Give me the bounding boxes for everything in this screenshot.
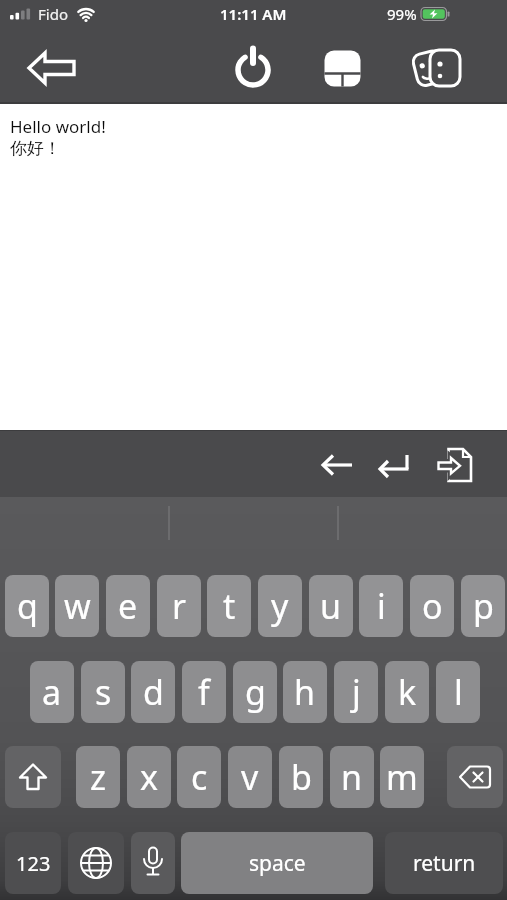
staticText: r: [172, 583, 187, 629]
button[interactable]: s: [81, 661, 125, 723]
staticText: k: [398, 669, 417, 715]
button[interactable]: u: [309, 575, 353, 637]
staticText: j: [352, 669, 361, 715]
staticText: 99%: [387, 4, 417, 24]
button[interactable]: l: [436, 661, 480, 723]
button[interactable]: [408, 42, 466, 94]
staticText: return: [413, 849, 476, 878]
button[interactable]: h: [283, 661, 327, 723]
button[interactable]: n: [330, 746, 374, 808]
staticText: d: [143, 669, 164, 715]
button[interactable]: [430, 442, 482, 488]
staticText: 11:11 AM: [220, 4, 287, 24]
button[interactable]: y: [258, 575, 302, 637]
button[interactable]: q: [5, 575, 49, 637]
staticText: m: [386, 754, 418, 800]
staticText: o: [422, 583, 443, 629]
button[interactable]: p: [461, 575, 505, 637]
staticText: q: [17, 583, 38, 629]
staticText: 123: [16, 850, 51, 877]
button[interactable]: g: [233, 661, 277, 723]
button[interactable]: c: [177, 746, 221, 808]
button[interactable]: 123: [5, 832, 61, 894]
staticText: h: [294, 669, 316, 715]
button[interactable]: t: [207, 575, 251, 637]
button[interactable]: j: [334, 661, 378, 723]
staticText: space: [249, 849, 306, 878]
button[interactable]: [230, 42, 276, 92]
staticText: v: [241, 754, 259, 800]
button[interactable]: m: [380, 746, 424, 808]
button[interactable]: i: [359, 575, 403, 637]
staticText: x: [140, 754, 158, 800]
button[interactable]: z: [76, 746, 120, 808]
button[interactable]: [68, 832, 124, 894]
button[interactable]: o: [410, 575, 454, 637]
staticText: Fido: [38, 4, 68, 24]
staticText: n: [341, 754, 363, 800]
staticText: e: [118, 583, 138, 629]
button[interactable]: return: [385, 832, 503, 894]
button[interactable]: a: [30, 661, 74, 723]
button[interactable]: [312, 444, 364, 486]
staticText: Hello world! 你好！: [10, 115, 106, 159]
button[interactable]: v: [228, 746, 272, 808]
button[interactable]: x: [127, 746, 171, 808]
staticText: y: [271, 583, 289, 629]
staticText: z: [90, 754, 106, 800]
button[interactable]: [447, 746, 503, 808]
staticText: i: [377, 583, 386, 629]
button[interactable]: d: [131, 661, 175, 723]
button[interactable]: b: [279, 746, 323, 808]
staticText: f: [198, 669, 210, 715]
staticText: l: [454, 669, 463, 715]
staticText: w: [64, 583, 91, 629]
staticText: s: [95, 669, 112, 715]
staticText: c: [191, 754, 208, 800]
button[interactable]: r: [157, 575, 201, 637]
button[interactable]: [5, 746, 61, 808]
staticText: b: [291, 754, 312, 800]
staticText: p: [473, 583, 494, 629]
button[interactable]: k: [385, 661, 429, 723]
staticText: u: [320, 583, 342, 629]
staticText: a: [42, 669, 62, 715]
button[interactable]: e: [106, 575, 150, 637]
staticText: g: [245, 669, 266, 715]
button[interactable]: [131, 832, 175, 894]
button[interactable]: space: [181, 832, 373, 894]
button[interactable]: [316, 44, 368, 92]
button[interactable]: [22, 44, 84, 92]
staticText: t: [223, 583, 236, 629]
button[interactable]: f: [182, 661, 226, 723]
button[interactable]: [368, 444, 420, 486]
button[interactable]: w: [55, 575, 99, 637]
